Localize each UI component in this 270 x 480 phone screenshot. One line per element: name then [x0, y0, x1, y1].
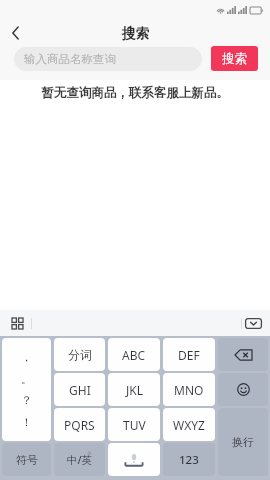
staticText: ， [21, 350, 32, 364]
button[interactable]: 输入商品名称查询 [14, 47, 202, 71]
staticText: TUV [123, 417, 146, 433]
staticText: 暂无查询商品，联系客服上新品。 [0, 85, 270, 101]
staticText: 换行 [232, 435, 254, 449]
staticText: 搜索 [222, 51, 247, 67]
staticText: PQRS [64, 417, 95, 433]
button[interactable]: 换行 [218, 408, 268, 476]
button[interactable]: JKL [108, 373, 160, 406]
button[interactable]: TUV [108, 408, 160, 441]
button[interactable]: 123 [163, 443, 215, 476]
button[interactable]: Hide keyboard [241, 313, 265, 333]
staticText: 。 [21, 372, 32, 386]
staticText: 符号 [16, 453, 38, 467]
button[interactable]: 符号 [2, 443, 51, 476]
button[interactable]: DEF [163, 338, 215, 371]
button[interactable]: 分词 [54, 338, 105, 371]
button[interactable]: Back [0, 20, 30, 46]
staticText: 输入商品名称查询 [24, 52, 116, 66]
button[interactable]: Keyboard modes [6, 312, 28, 334]
button[interactable]: ABC [108, 338, 160, 371]
button[interactable]: 中/英 [54, 443, 105, 476]
staticText: GHI [69, 382, 91, 398]
button[interactable]: 搜索 [211, 46, 258, 71]
staticText: ？ [21, 393, 32, 407]
button[interactable]: Space [108, 443, 160, 476]
staticText: 搜索 [122, 25, 149, 42]
button[interactable]: WXYZ [163, 408, 215, 441]
staticText: ！ [21, 415, 32, 429]
staticText: MNO [174, 382, 204, 398]
staticText: DEF [178, 347, 200, 363]
button[interactable]: ， [2, 338, 51, 441]
button[interactable]: MNO [163, 373, 215, 406]
staticText: WXYZ [173, 417, 205, 433]
staticText: 分词 [68, 347, 92, 362]
staticText: ABC [122, 347, 146, 363]
button[interactable]: Emoji [218, 373, 268, 406]
staticText: 123 [179, 452, 199, 468]
staticText: 中/英 [67, 453, 93, 467]
button[interactable]: PQRS [54, 408, 105, 441]
staticText: JKL [126, 382, 143, 398]
button[interactable]: GHI [54, 373, 105, 406]
button[interactable]: Backspace [218, 338, 268, 371]
